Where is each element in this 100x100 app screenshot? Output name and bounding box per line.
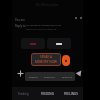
staticText: they're not sure your follow-up: [26, 28, 57, 31]
button[interactable]: SPEAK A MEMORY NOW: [31, 53, 61, 66]
button[interactable]: FEEDING: [41, 72, 58, 81]
staticText: Feeling: [29, 75, 38, 78]
staticText: FEELING: [62, 75, 72, 78]
button[interactable]: Share: [74, 16, 78, 20]
button[interactable]: The Memory Box: [12, 1, 83, 9]
button[interactable]: FEELINGS: [59, 87, 83, 100]
staticText: FEEDING: [44, 75, 55, 78]
staticText: SPEAK A MEMORY NOW: [35, 55, 57, 64]
staticText: FEELINGS: [64, 92, 79, 96]
staticText: You received a message from Sarah: [26, 24, 61, 27]
staticText: The Memory Box: [36, 3, 59, 7]
button[interactable]: FEEDING: [35, 87, 59, 100]
button[interactable]: FEELING: [58, 72, 75, 81]
button[interactable]: More options: [79, 16, 83, 20]
button[interactable]: Feeling: [25, 72, 41, 81]
staticText: FEEDING: [41, 92, 54, 96]
button[interactable]: [21, 38, 45, 49]
button[interactable]: Feeding: [12, 87, 35, 100]
button[interactable]: Add: [17, 70, 24, 77]
staticText: Feeding: [18, 92, 29, 96]
button[interactable]: Send: [75, 70, 82, 77]
staticText: Reply to: [15, 24, 26, 28]
staticText: You are: [15, 18, 25, 22]
button[interactable]: Record a memory: [62, 55, 70, 66]
button[interactable]: [47, 38, 71, 49]
